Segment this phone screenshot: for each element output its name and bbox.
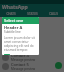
staticText: Contact 5 bbox=[11, 62, 29, 67]
staticText: Contact 2 bbox=[11, 35, 29, 40]
staticText: Contact 0 bbox=[11, 17, 29, 22]
staticText: Message preview bbox=[11, 49, 36, 53]
staticText: Message preview bbox=[11, 67, 36, 71]
staticText: Header A bbox=[4, 25, 23, 30]
staticText: STATUS bbox=[22, 12, 43, 16]
staticText: Contact 3 bbox=[11, 44, 29, 49]
button[interactable]: New chat bbox=[55, 62, 62, 69]
staticText: CHATS bbox=[0, 12, 22, 16]
staticText: CALLS bbox=[43, 12, 64, 16]
staticText: Contact 1 bbox=[11, 26, 29, 31]
staticText: WhatsApp bbox=[2, 4, 28, 11]
staticText: Message preview bbox=[11, 31, 36, 35]
staticText: Select one bbox=[4, 18, 24, 23]
staticText: Contact 4 bbox=[11, 53, 29, 58]
staticText: Message preview bbox=[11, 40, 36, 44]
staticText: Subtitle line bbox=[4, 30, 21, 34]
staticText: Lorem ipsum dolor sit amet consectetur a… bbox=[4, 36, 37, 52]
staticText: Message preview bbox=[11, 22, 36, 26]
staticText: Message preview bbox=[11, 58, 36, 62]
